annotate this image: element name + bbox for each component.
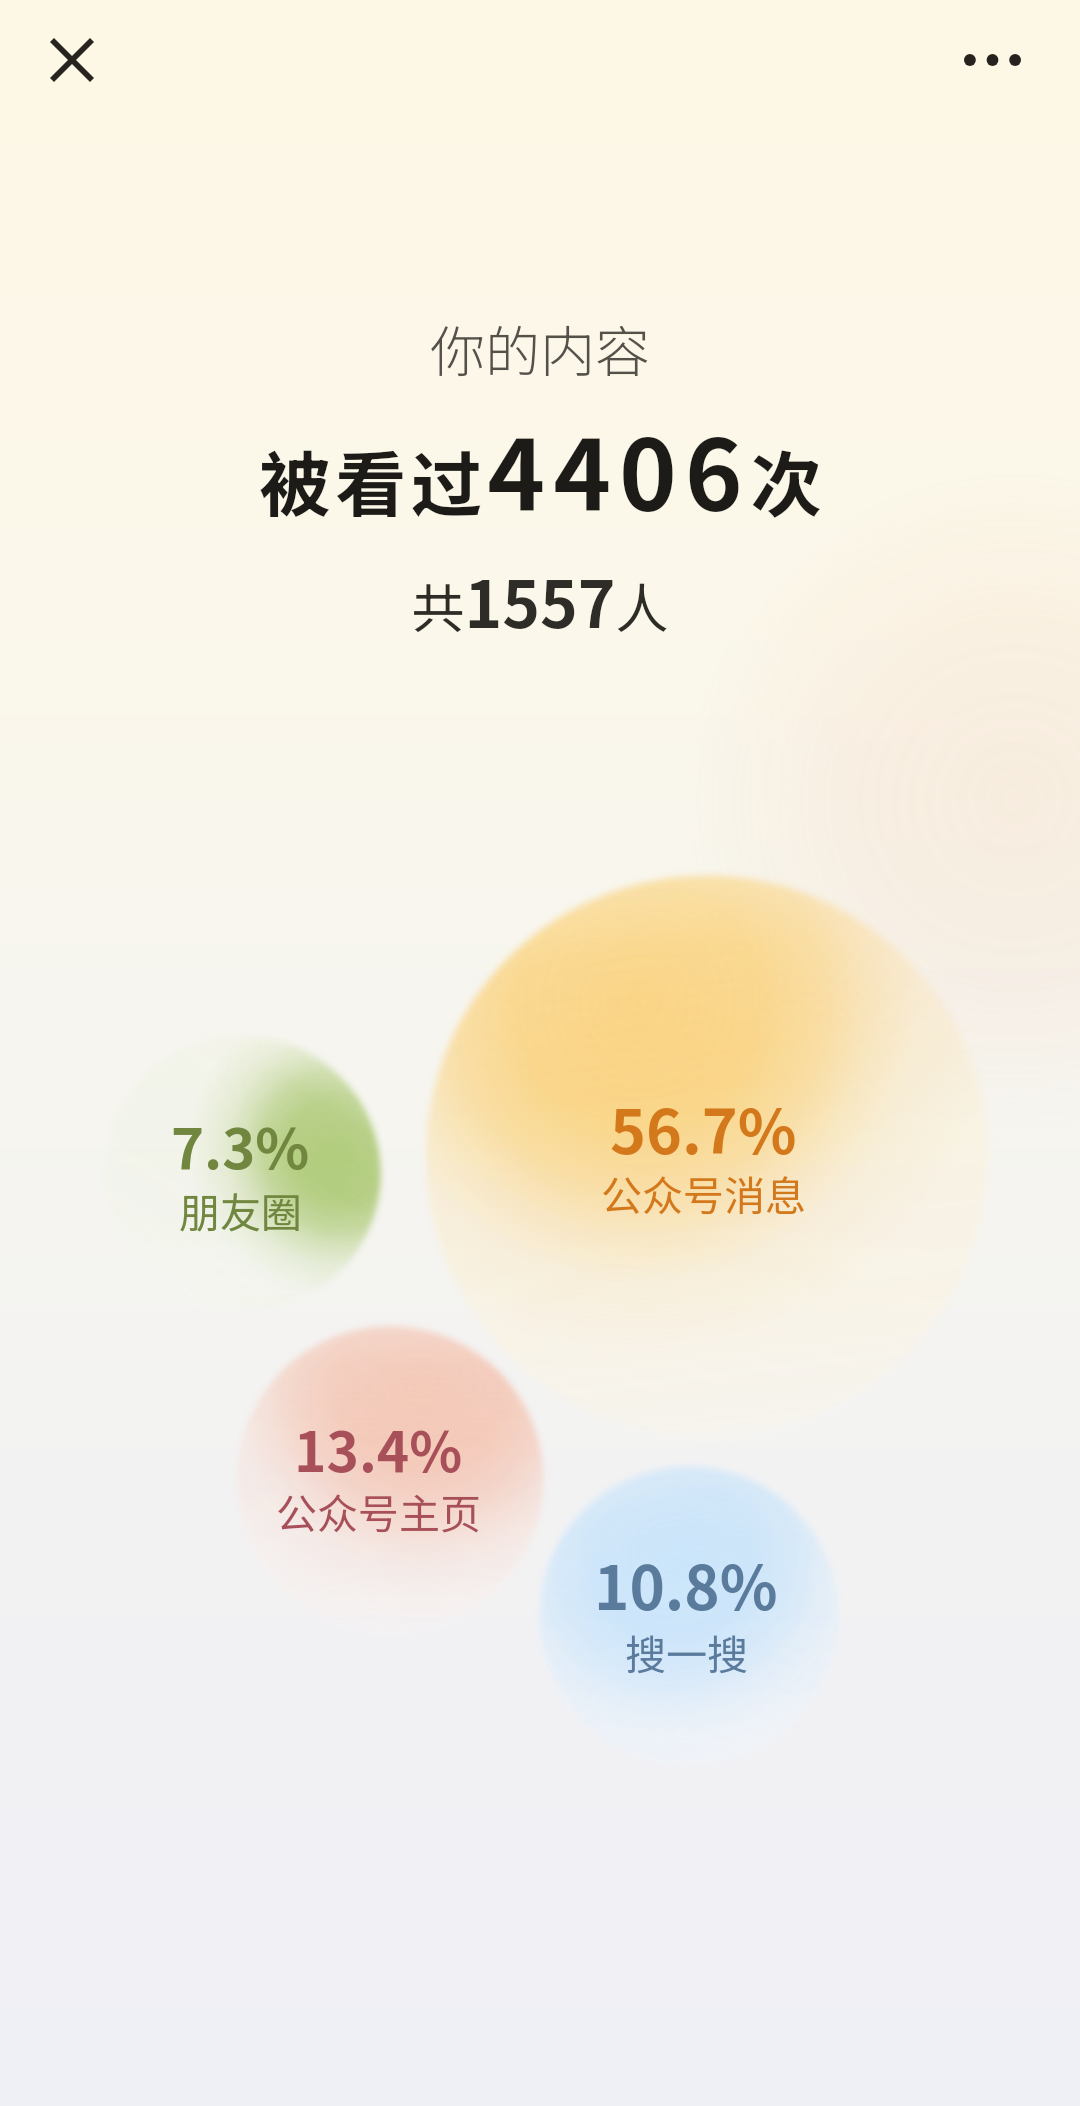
staticText: 7.3%: [171, 1104, 310, 1185]
staticText: 共1557人: [411, 554, 669, 647]
staticText: 朋友圈: [179, 1180, 302, 1239]
staticText: 搜一搜: [625, 1622, 748, 1681]
button[interactable]: More options: [938, 28, 1046, 92]
button[interactable]: Close: [20, 28, 124, 92]
staticText: 被看过4406次: [259, 397, 822, 539]
staticText: 公众号消息: [601, 1163, 806, 1222]
staticText: 10.8%: [594, 1540, 778, 1627]
staticText: 13.4%: [294, 1408, 463, 1488]
staticText: 公众号主页: [276, 1481, 481, 1540]
staticText: 你的内容: [430, 308, 651, 388]
staticText: 56.7%: [610, 1083, 797, 1171]
